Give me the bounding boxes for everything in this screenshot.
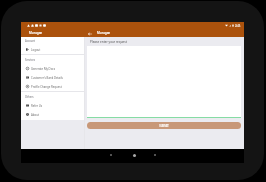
staticText: Generate My Docs bbox=[31, 67, 56, 71]
button[interactable]: Refer Us bbox=[21, 101, 84, 110]
staticText: Refer Us bbox=[31, 104, 43, 108]
staticText: About bbox=[31, 113, 39, 117]
button[interactable]: About bbox=[21, 110, 84, 119]
button[interactable]: Home bbox=[129, 150, 139, 160]
staticText: 2:45 bbox=[235, 24, 241, 28]
button[interactable]: SUBMIT bbox=[87, 122, 241, 129]
button[interactable]: Profile Change Request bbox=[21, 82, 84, 91]
button[interactable]: Logout bbox=[21, 45, 84, 54]
staticText: Customer's Bank Details bbox=[31, 76, 63, 80]
staticText: Murugan bbox=[29, 31, 43, 35]
button[interactable]: Recents bbox=[150, 150, 160, 160]
staticText: Logout bbox=[31, 48, 41, 52]
button[interactable]: Back bbox=[86, 30, 93, 37]
staticText: Services bbox=[25, 58, 36, 62]
staticText: Others bbox=[25, 95, 34, 99]
button[interactable]: Back bbox=[106, 150, 116, 160]
button[interactable]: Generate My Docs bbox=[21, 64, 84, 73]
staticText: Murugan bbox=[97, 31, 111, 35]
staticText: Profile Change Request bbox=[31, 85, 62, 89]
button[interactable]: Customer's Bank Details bbox=[21, 73, 84, 82]
staticText: SUBMIT bbox=[159, 124, 169, 127]
staticText: Account bbox=[25, 39, 36, 43]
staticText: Please enter your request bbox=[90, 40, 127, 44]
